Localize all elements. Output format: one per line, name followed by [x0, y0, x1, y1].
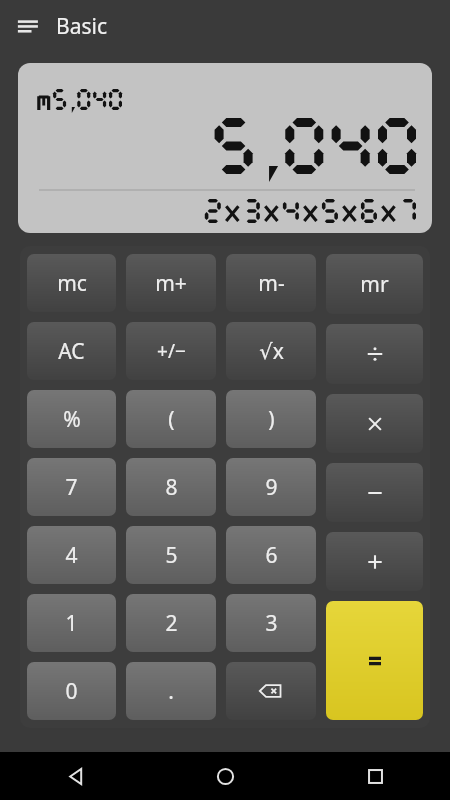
staticText: 9 — [265, 473, 278, 502]
staticText: Basic — [56, 12, 107, 41]
button[interactable]: +/− — [126, 322, 216, 380]
button[interactable]: m+ — [126, 254, 216, 312]
button[interactable]: 5 — [126, 526, 216, 584]
button[interactable]: Home — [150, 752, 300, 800]
staticText: 7 — [65, 473, 78, 502]
staticText: 4 — [65, 541, 78, 570]
button[interactable]: 4 — [27, 526, 116, 584]
staticText: 3 — [265, 609, 278, 638]
button[interactable]: 0 — [27, 662, 116, 720]
button[interactable]: m- — [226, 254, 316, 312]
button[interactable]: Divide — [326, 324, 423, 384]
button[interactable]: Plus — [326, 532, 423, 591]
staticText: 8 — [165, 473, 178, 502]
staticText: +/− — [157, 338, 186, 364]
button[interactable]: Equals — [326, 601, 423, 720]
button[interactable]: mr — [326, 254, 423, 314]
staticText: 5 — [165, 541, 178, 570]
staticText: ( — [168, 405, 175, 434]
button[interactable]: Backspace — [226, 662, 316, 720]
button[interactable]: 9 — [226, 458, 316, 516]
staticText: ) — [268, 405, 275, 434]
button[interactable]: Recent apps — [300, 752, 450, 800]
button[interactable]: 7 — [27, 458, 116, 516]
staticText: m- — [258, 269, 285, 298]
staticText: 0 — [65, 677, 78, 706]
button[interactable]: . — [126, 662, 216, 720]
button[interactable]: 8 — [126, 458, 216, 516]
staticText: √x — [259, 337, 284, 366]
button[interactable] — [18, 63, 432, 233]
button[interactable]: ) — [226, 390, 316, 448]
button[interactable]: AC — [27, 322, 116, 380]
button[interactable]: 3 — [226, 594, 316, 652]
staticText: mr — [360, 270, 389, 299]
button[interactable]: % — [27, 390, 116, 448]
staticText: AC — [58, 337, 85, 366]
button[interactable]: √x — [226, 322, 316, 380]
button[interactable]: Back — [0, 752, 150, 800]
button[interactable]: 6 — [226, 526, 316, 584]
staticText: % — [63, 405, 81, 434]
staticText: 1 — [65, 609, 78, 638]
button[interactable]: ( — [126, 390, 216, 448]
button[interactable]: 1 — [27, 594, 116, 652]
button[interactable]: mc — [27, 254, 116, 312]
button[interactable]: Minus — [326, 463, 423, 522]
staticText: mc — [57, 269, 87, 298]
staticText: 2 — [165, 609, 178, 638]
staticText: m+ — [155, 269, 187, 298]
staticText: . — [168, 677, 174, 706]
button[interactable]: 2 — [126, 594, 216, 652]
staticText: 6 — [265, 541, 278, 570]
button[interactable]: Multiply — [326, 394, 423, 453]
button[interactable]: Open menu — [8, 6, 48, 46]
